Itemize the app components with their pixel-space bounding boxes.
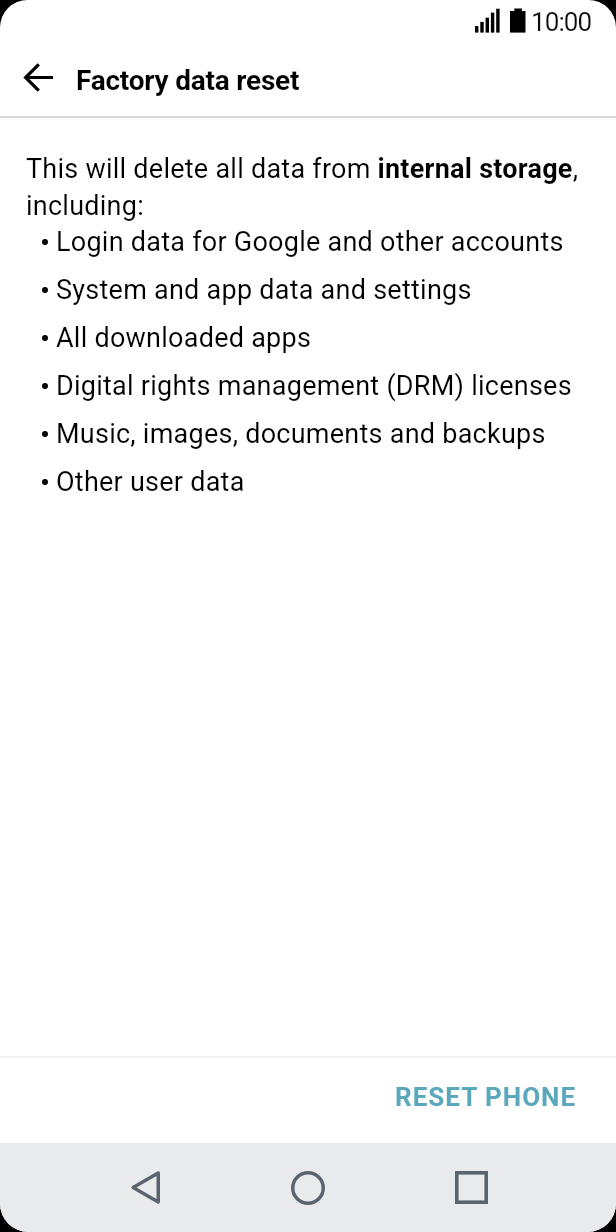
button[interactable]: Music, images, documents and backups xyxy=(0,410,616,458)
staticText: All downloaded apps xyxy=(56,322,312,354)
button[interactable]: Login data for Google and other accounts xyxy=(0,218,616,266)
button[interactable]: Home xyxy=(276,1143,340,1232)
button[interactable]: Back xyxy=(113,1143,177,1232)
staticText: Factory data reset xyxy=(76,64,300,97)
staticText: Login data for Google and other accounts xyxy=(56,226,564,258)
staticText: System and app data and settings xyxy=(56,274,472,306)
button[interactable]: System and app data and settings xyxy=(0,266,616,314)
button[interactable]: All downloaded apps xyxy=(0,314,616,362)
button[interactable]: RESET PHONE xyxy=(379,1070,593,1124)
button[interactable]: Navigate up xyxy=(10,49,66,105)
button[interactable]: Other user data xyxy=(0,458,616,506)
staticText: RESET PHONE xyxy=(395,1082,577,1112)
button[interactable]: Digital rights management (DRM) licenses xyxy=(0,362,616,410)
staticText: Other user data xyxy=(56,466,245,498)
button[interactable]: Recent apps xyxy=(439,1143,503,1232)
staticText: Music, images, documents and backups xyxy=(56,418,546,450)
staticText: 10:00 xyxy=(531,7,592,37)
staticText: Digital rights management (DRM) licenses xyxy=(56,370,572,402)
staticText: This will delete all data from internal … xyxy=(26,153,602,221)
